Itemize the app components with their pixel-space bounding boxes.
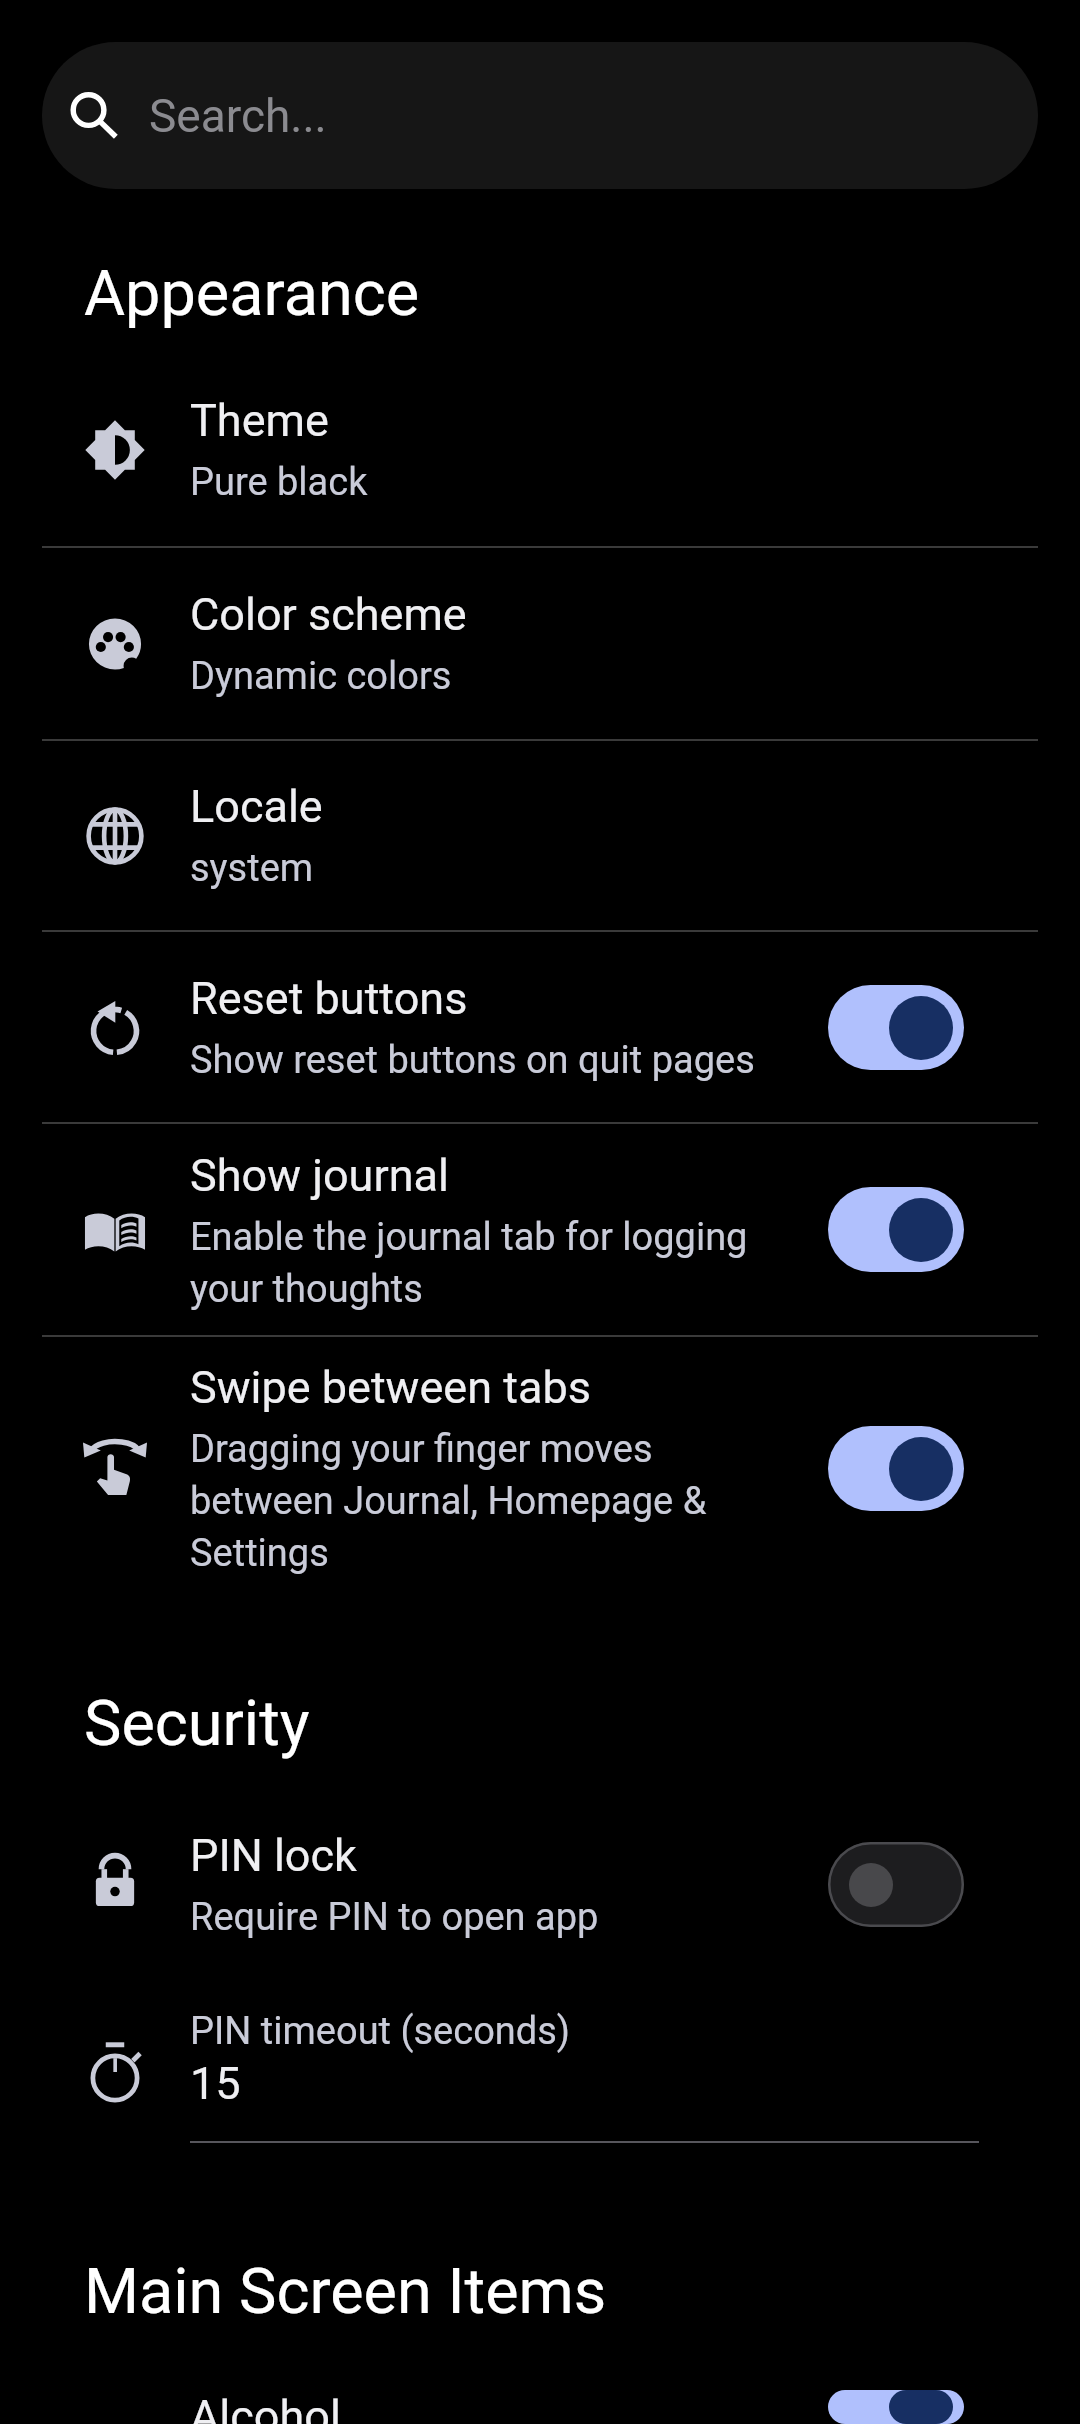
staticText: Color scheme [190,588,467,641]
staticText: Theme [190,394,329,447]
button[interactable]: Show journal [828,1187,964,1272]
button[interactable]: Reset buttons [0,932,1080,1122]
button[interactable]: Theme [0,353,1080,546]
staticText: 15 [190,2057,241,2110]
button[interactable]: Locale [0,741,1080,930]
staticText: Pure black [190,460,368,505]
other: Search [68,90,120,142]
staticText: PIN lock [190,1829,357,1882]
button[interactable]: PIN lock [828,1842,964,1927]
button[interactable]: PIN lock [0,1792,1080,1977]
staticText: Require PIN to open app [190,1895,599,1940]
staticText: Enable the journal tab for logging your … [190,1215,798,1311]
button[interactable]: Swipe between tabs [828,1426,964,1511]
staticText: Reset buttons [190,972,468,1025]
staticText: Main Screen Items [84,2255,607,2329]
staticText: Search... [149,89,327,143]
staticText: Dynamic colors [190,654,452,699]
staticText: Show journal [190,1149,449,1202]
staticText: Swipe between tabs [190,1361,591,1414]
staticText: Dragging your finger moves between Journ… [190,1427,798,1575]
button[interactable]: Search [42,42,1038,189]
button[interactable]: Color scheme [0,548,1080,739]
staticText: Security [84,1687,310,1761]
button[interactable]: Swipe between tabs [0,1337,1080,1599]
staticText: Locale [190,780,323,833]
staticText: PIN timeout (seconds) [190,2009,571,2054]
staticText: system [190,846,314,891]
button[interactable]: Reset buttons [828,985,964,1070]
button[interactable]: Alcohol [0,2390,1080,2424]
staticText: Show reset buttons on quit pages [190,1038,755,1083]
button[interactable]: Alcohol [828,2390,964,2424]
staticText: Alcohol [190,2390,341,2424]
button[interactable]: Show journal [0,1124,1080,1335]
staticText: Appearance [84,257,420,331]
